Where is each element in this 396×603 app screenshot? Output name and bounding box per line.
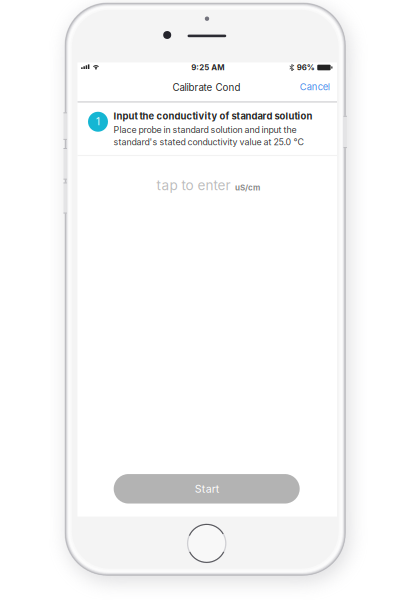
staticText: 96% <box>297 63 315 72</box>
button[interactable]: Start <box>114 474 300 504</box>
staticText: Input the conductivity of standard solut… <box>113 110 312 122</box>
staticText: tap to enter <box>156 177 230 194</box>
button[interactable]: Cancel <box>293 76 337 98</box>
staticText: Cancel <box>300 81 330 92</box>
staticText: Place probe in standard solution and inp… <box>113 124 296 135</box>
staticText: Calibrate Cond <box>172 81 240 93</box>
staticText: 9:25 AM <box>191 62 224 72</box>
staticText: uS/cm <box>235 183 260 192</box>
button[interactable]: tap to enter <box>128 171 288 199</box>
staticText: standard's stated conductivity value at … <box>113 137 303 147</box>
staticText: Start <box>195 482 219 495</box>
staticText: 1 <box>96 116 100 128</box>
